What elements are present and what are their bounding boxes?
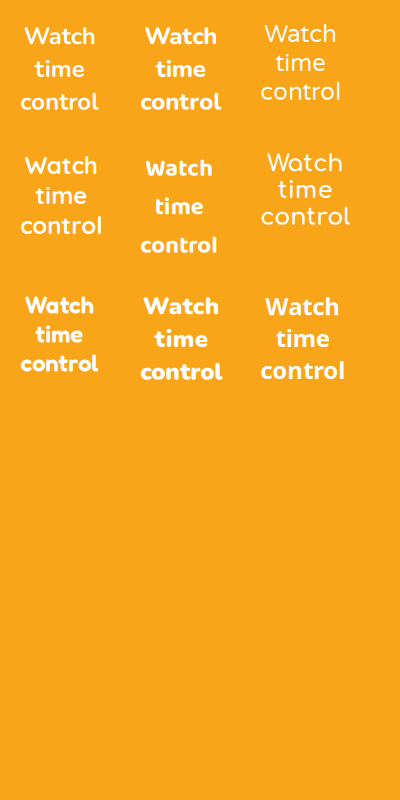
staticText: Watch time control [260, 20, 341, 107]
staticText: Watch time control [140, 290, 222, 388]
staticText: Watch time control [20, 150, 102, 240]
staticText: Watch time control [260, 150, 350, 230]
staticText: Watch time control [260, 290, 345, 386]
staticText: Watch time control [140, 150, 218, 265]
staticText: Watch time control [140, 20, 221, 118]
staticText: Watch time control [20, 290, 98, 377]
staticText: Watch time control [20, 20, 99, 118]
